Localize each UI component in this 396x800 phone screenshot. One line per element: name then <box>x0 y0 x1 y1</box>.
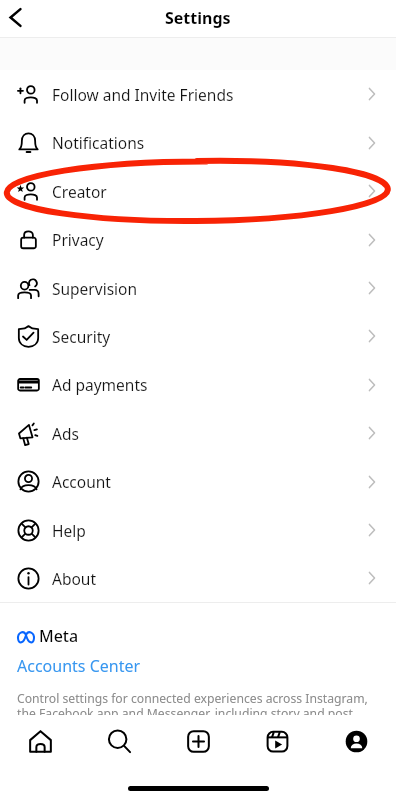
button[interactable]: Supervision <box>0 264 396 312</box>
staticText: About <box>52 568 96 589</box>
staticText: Privacy <box>52 229 104 250</box>
button[interactable]: Creator <box>0 167 396 215</box>
staticText: Follow and Invite Friends <box>52 84 234 105</box>
staticText: Settings <box>165 7 231 29</box>
staticText: Notifications <box>52 132 145 153</box>
button[interactable]: Account <box>0 457 396 506</box>
staticText: Ad payments <box>52 374 148 395</box>
button[interactable]: Follow and Invite Friends <box>0 70 396 118</box>
button[interactable]: About <box>0 554 396 602</box>
button[interactable]: Ad payments <box>0 360 396 409</box>
button[interactable]: Create <box>159 715 238 770</box>
button[interactable]: Back <box>0 0 40 37</box>
staticText: Account <box>52 471 111 492</box>
staticText: Creator <box>52 181 107 202</box>
button[interactable]: Privacy <box>0 215 396 264</box>
staticText: Supervision <box>52 278 138 299</box>
staticText: Help <box>52 520 86 541</box>
button[interactable]: Reels <box>238 715 317 770</box>
staticText: Security <box>52 326 111 347</box>
button[interactable]: Accounts Center <box>17 655 141 677</box>
button[interactable]: Home <box>0 715 80 770</box>
button[interactable]: Ads <box>0 409 396 457</box>
staticText: Accounts Center <box>17 655 141 677</box>
button[interactable]: Search <box>80 715 159 770</box>
staticText: Ads <box>52 423 79 444</box>
staticText: Control settings for connected experienc… <box>17 690 386 738</box>
button[interactable]: Profile <box>317 715 396 770</box>
button[interactable]: Security <box>0 312 396 360</box>
staticText: Meta <box>39 625 79 647</box>
button[interactable]: Help <box>0 506 396 554</box>
button[interactable]: Notifications <box>0 118 396 167</box>
